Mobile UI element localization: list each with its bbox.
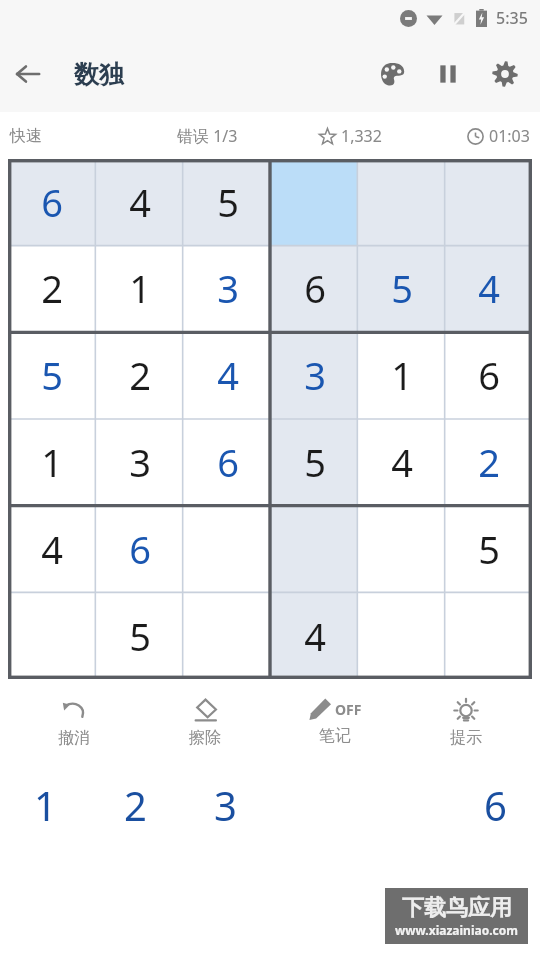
staticText: 01:03 (489, 125, 530, 147)
button[interactable]: 6 (445, 331, 532, 418)
staticText: 撤消 (58, 728, 90, 748)
button[interactable] (445, 159, 532, 245)
button[interactable]: Settings (476, 45, 534, 103)
staticText: 2 (478, 436, 500, 488)
staticText: 4 (304, 610, 326, 662)
staticText: 3 (129, 436, 151, 488)
staticText: OFF (335, 700, 362, 719)
button[interactable]: 2 (445, 418, 532, 505)
staticText: 1 (391, 349, 413, 401)
button[interactable]: 3 (271, 331, 358, 418)
staticText: 下载鸟应用 (402, 894, 512, 922)
button[interactable] (8, 592, 96, 679)
button[interactable]: 撤消 (18, 693, 130, 752)
button[interactable]: 2 (96, 331, 184, 418)
staticText: 快速 (10, 126, 42, 146)
button[interactable] (445, 592, 532, 679)
button[interactable]: 4 (8, 505, 96, 592)
staticText: 数独 (74, 59, 124, 90)
staticText: 5:35 (496, 7, 528, 29)
button[interactable]: 1 (8, 418, 96, 505)
button[interactable]: 1 (96, 245, 184, 331)
staticText: 5 (129, 610, 151, 662)
staticText: 4 (41, 523, 63, 575)
staticText: 6 (478, 349, 500, 401)
staticText: 2 (41, 262, 63, 314)
staticText: 1,332 (341, 125, 382, 147)
button[interactable]: Back (0, 46, 56, 102)
staticText: 1 (129, 262, 151, 314)
staticText: 4 (129, 176, 151, 228)
staticText: 3 (217, 262, 239, 314)
staticText: 4 (478, 262, 500, 314)
staticText: 5 (217, 176, 239, 228)
staticText: 3 (214, 778, 237, 832)
button[interactable]: 1 (0, 770, 90, 840)
button[interactable]: 4 (271, 592, 358, 679)
button[interactable]: 4 (445, 245, 532, 331)
button[interactable]: 6 (8, 159, 96, 245)
staticText: 6 (217, 436, 239, 488)
button[interactable]: 5 (8, 331, 96, 418)
button[interactable]: 4 (358, 418, 445, 505)
button[interactable]: 提示 (410, 693, 522, 752)
button[interactable]: OFF (279, 693, 391, 750)
button[interactable]: 6 (96, 505, 184, 592)
button[interactable]: 5 (445, 505, 532, 592)
button[interactable] (358, 592, 445, 679)
staticText: 2 (124, 778, 147, 832)
button[interactable]: 5 (96, 592, 184, 679)
button[interactable] (358, 159, 445, 245)
button[interactable]: 6 (184, 418, 271, 505)
button[interactable]: 4 (96, 159, 184, 245)
button[interactable] (358, 505, 445, 592)
button[interactable]: 6 (271, 245, 358, 331)
staticText: 1 (34, 778, 57, 832)
button[interactable]: Pause (420, 46, 476, 102)
staticText: 4 (391, 436, 413, 488)
button[interactable]: 4 (184, 331, 271, 418)
button[interactable]: 5 (358, 245, 445, 331)
staticText: 2 (129, 349, 151, 401)
staticText: 5 (41, 349, 63, 401)
staticText: 提示 (450, 728, 482, 748)
staticText: 5 (391, 262, 413, 314)
button[interactable] (184, 592, 271, 679)
button[interactable]: 5 (271, 418, 358, 505)
button[interactable] (271, 505, 358, 592)
button[interactable]: 2 (90, 770, 180, 840)
staticText: 笔记 (319, 726, 351, 746)
button[interactable]: 擦除 (149, 693, 261, 752)
button[interactable] (184, 505, 271, 592)
staticText: 擦除 (189, 728, 221, 748)
button[interactable]: 3 (180, 770, 270, 840)
staticText: www.xiazainiao.com (395, 922, 518, 938)
button[interactable]: 3 (96, 418, 184, 505)
button[interactable]: 3 (184, 245, 271, 331)
staticText: 5 (304, 436, 326, 488)
staticText: 3 (304, 349, 326, 401)
staticText: 4 (217, 349, 239, 401)
staticText: 6 (304, 262, 326, 314)
staticText: 1 (41, 436, 63, 488)
staticText: 6 (484, 778, 507, 832)
button[interactable]: 1 (358, 331, 445, 418)
staticText: 错误 1/3 (177, 125, 238, 147)
staticText: 6 (129, 523, 151, 575)
button[interactable] (271, 159, 358, 245)
staticText: 6 (41, 176, 63, 228)
button[interactable]: Theme (364, 46, 420, 102)
button[interactable]: 5 (184, 159, 271, 245)
staticText: 5 (478, 523, 500, 575)
button[interactable]: 6 (450, 770, 540, 840)
button[interactable]: 2 (8, 245, 96, 331)
